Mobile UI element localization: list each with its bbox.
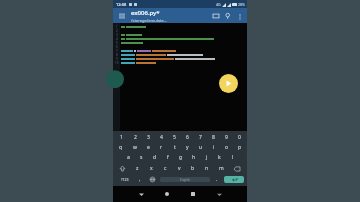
staticText: v (178, 165, 181, 172)
staticText: 8 (116, 53, 118, 57)
staticText: 9 (116, 57, 118, 61)
button[interactable]: 7 (194, 132, 207, 142)
button[interactable]: f (161, 152, 174, 163)
staticText: 4 (116, 37, 118, 41)
staticText: z (136, 165, 139, 172)
staticText: 4 (160, 134, 163, 141)
button[interactable]: Search (222, 10, 234, 22)
staticText: x (150, 165, 153, 172)
staticText: s (140, 154, 143, 161)
staticText: m (219, 165, 224, 172)
staticText: 1 (116, 25, 118, 29)
staticText: 2 (116, 29, 118, 33)
button[interactable]: g (174, 152, 187, 163)
staticText: 9 (225, 134, 228, 141)
button[interactable]: Change language (146, 175, 159, 184)
button[interactable]: Hide keyboard (206, 186, 232, 202)
staticText: 1 (120, 134, 123, 141)
button[interactable]: v (172, 163, 186, 174)
button[interactable]: l (226, 152, 239, 163)
staticText: p (238, 144, 242, 151)
button[interactable]: Recent apps (180, 186, 206, 202)
button[interactable]: k (213, 152, 226, 163)
button[interactable]: Back (128, 186, 154, 202)
button[interactable]: p (233, 142, 246, 152)
staticText: 3 (147, 134, 150, 141)
staticText: n (205, 165, 209, 172)
button[interactable]: Menu (116, 10, 127, 21)
button[interactable]: n (200, 163, 214, 174)
button[interactable]: a (122, 152, 135, 163)
button[interactable]: h (187, 152, 200, 163)
staticText: 6 (186, 134, 189, 141)
button[interactable]: o (220, 142, 233, 152)
button[interactable]: z (131, 163, 144, 174)
staticText: 4G (216, 2, 221, 7)
button[interactable]: 9 (220, 132, 233, 142)
staticText: a (127, 154, 130, 161)
staticText: ?123 (121, 177, 129, 182)
button[interactable]: 4 (155, 132, 168, 142)
button[interactable]: j (200, 152, 213, 163)
button[interactable]: u (194, 142, 207, 152)
staticText: 28% (238, 2, 245, 7)
staticText: /storage/emulate... (131, 18, 167, 23)
staticText: 7 (116, 49, 118, 53)
staticText: 5 (173, 134, 176, 141)
staticText: English (180, 178, 191, 182)
button[interactable]: d (148, 152, 161, 163)
staticText: c (164, 165, 167, 172)
staticText: 2 (134, 134, 137, 141)
staticText: 5 (116, 41, 118, 45)
button[interactable]: t (168, 142, 181, 152)
staticText: 8 (212, 134, 215, 141)
button[interactable]: ex006.py* (131, 9, 183, 23)
button[interactable]: s (135, 152, 148, 163)
button[interactable]: r (155, 142, 168, 152)
staticText: k (218, 154, 221, 161)
staticText: 3 (116, 33, 118, 37)
button[interactable]: Backspace (228, 163, 246, 174)
button[interactable]: Home (154, 186, 180, 202)
button[interactable]: Shift (114, 163, 131, 174)
button[interactable]: w (128, 142, 142, 152)
button[interactable]: 2 (128, 132, 142, 142)
button[interactable]: Enter (224, 176, 244, 183)
button[interactable]: Run (219, 74, 238, 93)
button[interactable]: More options (234, 11, 245, 22)
staticText: l (232, 154, 234, 161)
staticText: d (153, 154, 157, 161)
staticText: t (174, 144, 176, 151)
button[interactable]: 5 (168, 132, 181, 142)
staticText: w (133, 144, 137, 151)
button[interactable]: b (186, 163, 200, 174)
button[interactable]: 8 (207, 132, 220, 142)
button[interactable]: e (142, 142, 155, 152)
button[interactable]: . (211, 175, 223, 184)
button[interactable]: x (144, 163, 158, 174)
staticText: g (179, 154, 183, 161)
button[interactable]: Tabs (210, 10, 222, 22)
button[interactable]: English (160, 177, 210, 182)
staticText: h (192, 154, 196, 161)
staticText: 6 (116, 45, 118, 49)
staticText: . (216, 176, 218, 183)
button[interactable]: c (158, 163, 172, 174)
staticText: e (147, 144, 150, 151)
button[interactable]: , (134, 175, 146, 184)
button[interactable]: ?123 (115, 175, 134, 184)
staticText: u (199, 144, 203, 151)
button[interactable]: y (181, 142, 194, 152)
staticText: i (213, 144, 215, 151)
staticText: r (160, 144, 163, 151)
button[interactable]: 0 (233, 132, 246, 142)
button[interactable]: i (207, 142, 220, 152)
staticText: 10 (115, 61, 119, 65)
staticText: f (167, 154, 169, 161)
button[interactable]: 1 (114, 132, 128, 142)
button[interactable]: 6 (181, 132, 194, 142)
button[interactable]: m (214, 163, 228, 174)
button[interactable]: 3 (142, 132, 155, 142)
button[interactable]: q (114, 142, 128, 152)
staticText: 0 (238, 134, 241, 141)
